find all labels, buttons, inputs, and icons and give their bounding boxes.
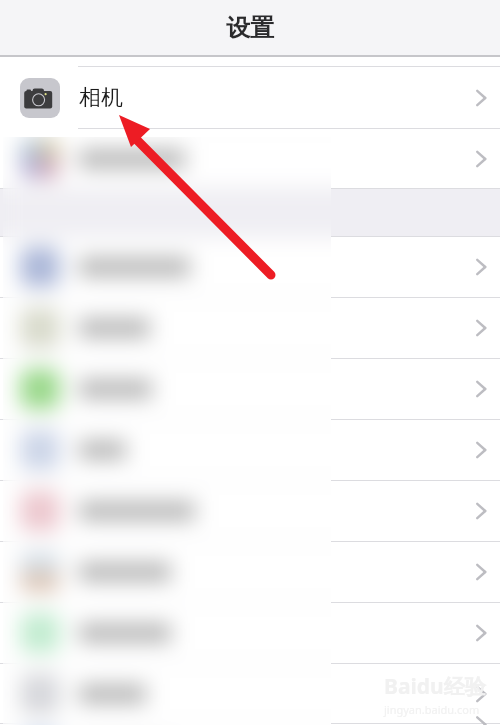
button[interactable]: 设置 [0, 0, 500, 55]
button[interactable] [0, 298, 500, 358]
button[interactable] [0, 129, 500, 188]
button[interactable] [0, 542, 500, 602]
staticText: jingyan.baidu.com [384, 702, 480, 717]
button[interactable]: 相机 [0, 67, 500, 128]
staticText: Baidu经验 [384, 672, 486, 701]
button[interactable]: 设置 [0, 0, 500, 55]
staticText: 相机 [79, 84, 123, 112]
staticText: 相机 [79, 84, 123, 112]
button[interactable] [0, 359, 500, 419]
staticText: 设置 [226, 13, 274, 43]
button[interactable] [0, 724, 500, 725]
button[interactable]: 相机 [0, 67, 500, 128]
button[interactable] [0, 237, 500, 297]
button[interactable] [0, 481, 500, 541]
button[interactable] [0, 603, 500, 663]
button[interactable] [0, 359, 500, 419]
button[interactable] [0, 603, 500, 663]
button[interactable] [0, 481, 500, 541]
button[interactable] [0, 724, 500, 725]
button[interactable] [0, 237, 500, 297]
staticText: 设置 [226, 13, 274, 43]
button[interactable] [0, 664, 500, 723]
button[interactable] [0, 298, 500, 358]
button[interactable] [0, 129, 500, 188]
button[interactable] [0, 664, 500, 723]
button[interactable] [0, 420, 500, 480]
button[interactable] [0, 542, 500, 602]
button[interactable] [0, 420, 500, 480]
